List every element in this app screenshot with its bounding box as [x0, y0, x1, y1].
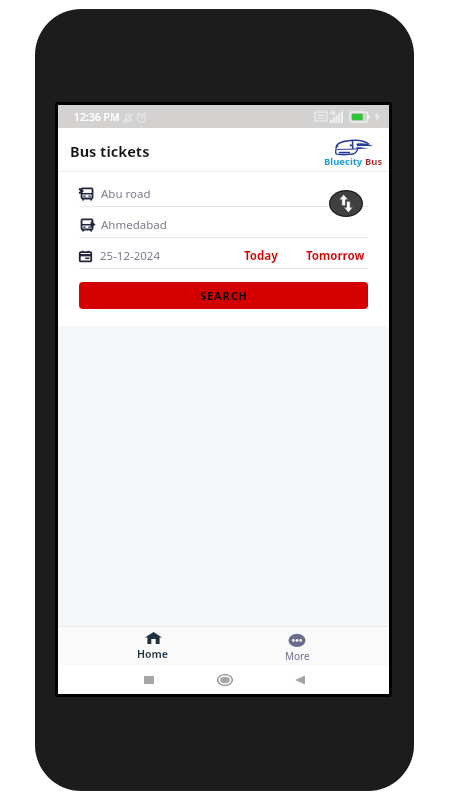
button[interactable]: Tomorrow: [303, 248, 368, 264]
button[interactable]: Swap source and destination: [329, 190, 363, 217]
button[interactable]: Back: [285, 670, 315, 690]
button[interactable]: SEARCH: [79, 282, 368, 309]
staticText: Bus tickets: [70, 141, 150, 161]
staticText: More: [285, 649, 310, 663]
staticText: Abu road: [101, 186, 151, 202]
staticText: Tomorrow: [306, 248, 365, 264]
staticText: Ahmedabad: [101, 217, 167, 233]
button[interactable]: Recent apps: [134, 670, 164, 690]
staticText: 25-12-2024: [100, 248, 161, 264]
button[interactable]: Home: [210, 670, 240, 690]
button[interactable]: Ahmedabad: [79, 207, 368, 237]
staticText: Home: [137, 647, 169, 661]
staticText: Bus: [365, 155, 383, 168]
staticText: Today: [244, 248, 278, 264]
button[interactable]: More: [266, 627, 328, 666]
staticText: 12:36 PM: [74, 110, 120, 124]
button[interactable]: Abu road: [79, 176, 368, 206]
staticText: Bluecity: [324, 155, 363, 168]
staticText: SEARCH: [200, 288, 248, 303]
button[interactable]: Home: [122, 627, 184, 666]
button[interactable]: Today: [241, 248, 281, 264]
